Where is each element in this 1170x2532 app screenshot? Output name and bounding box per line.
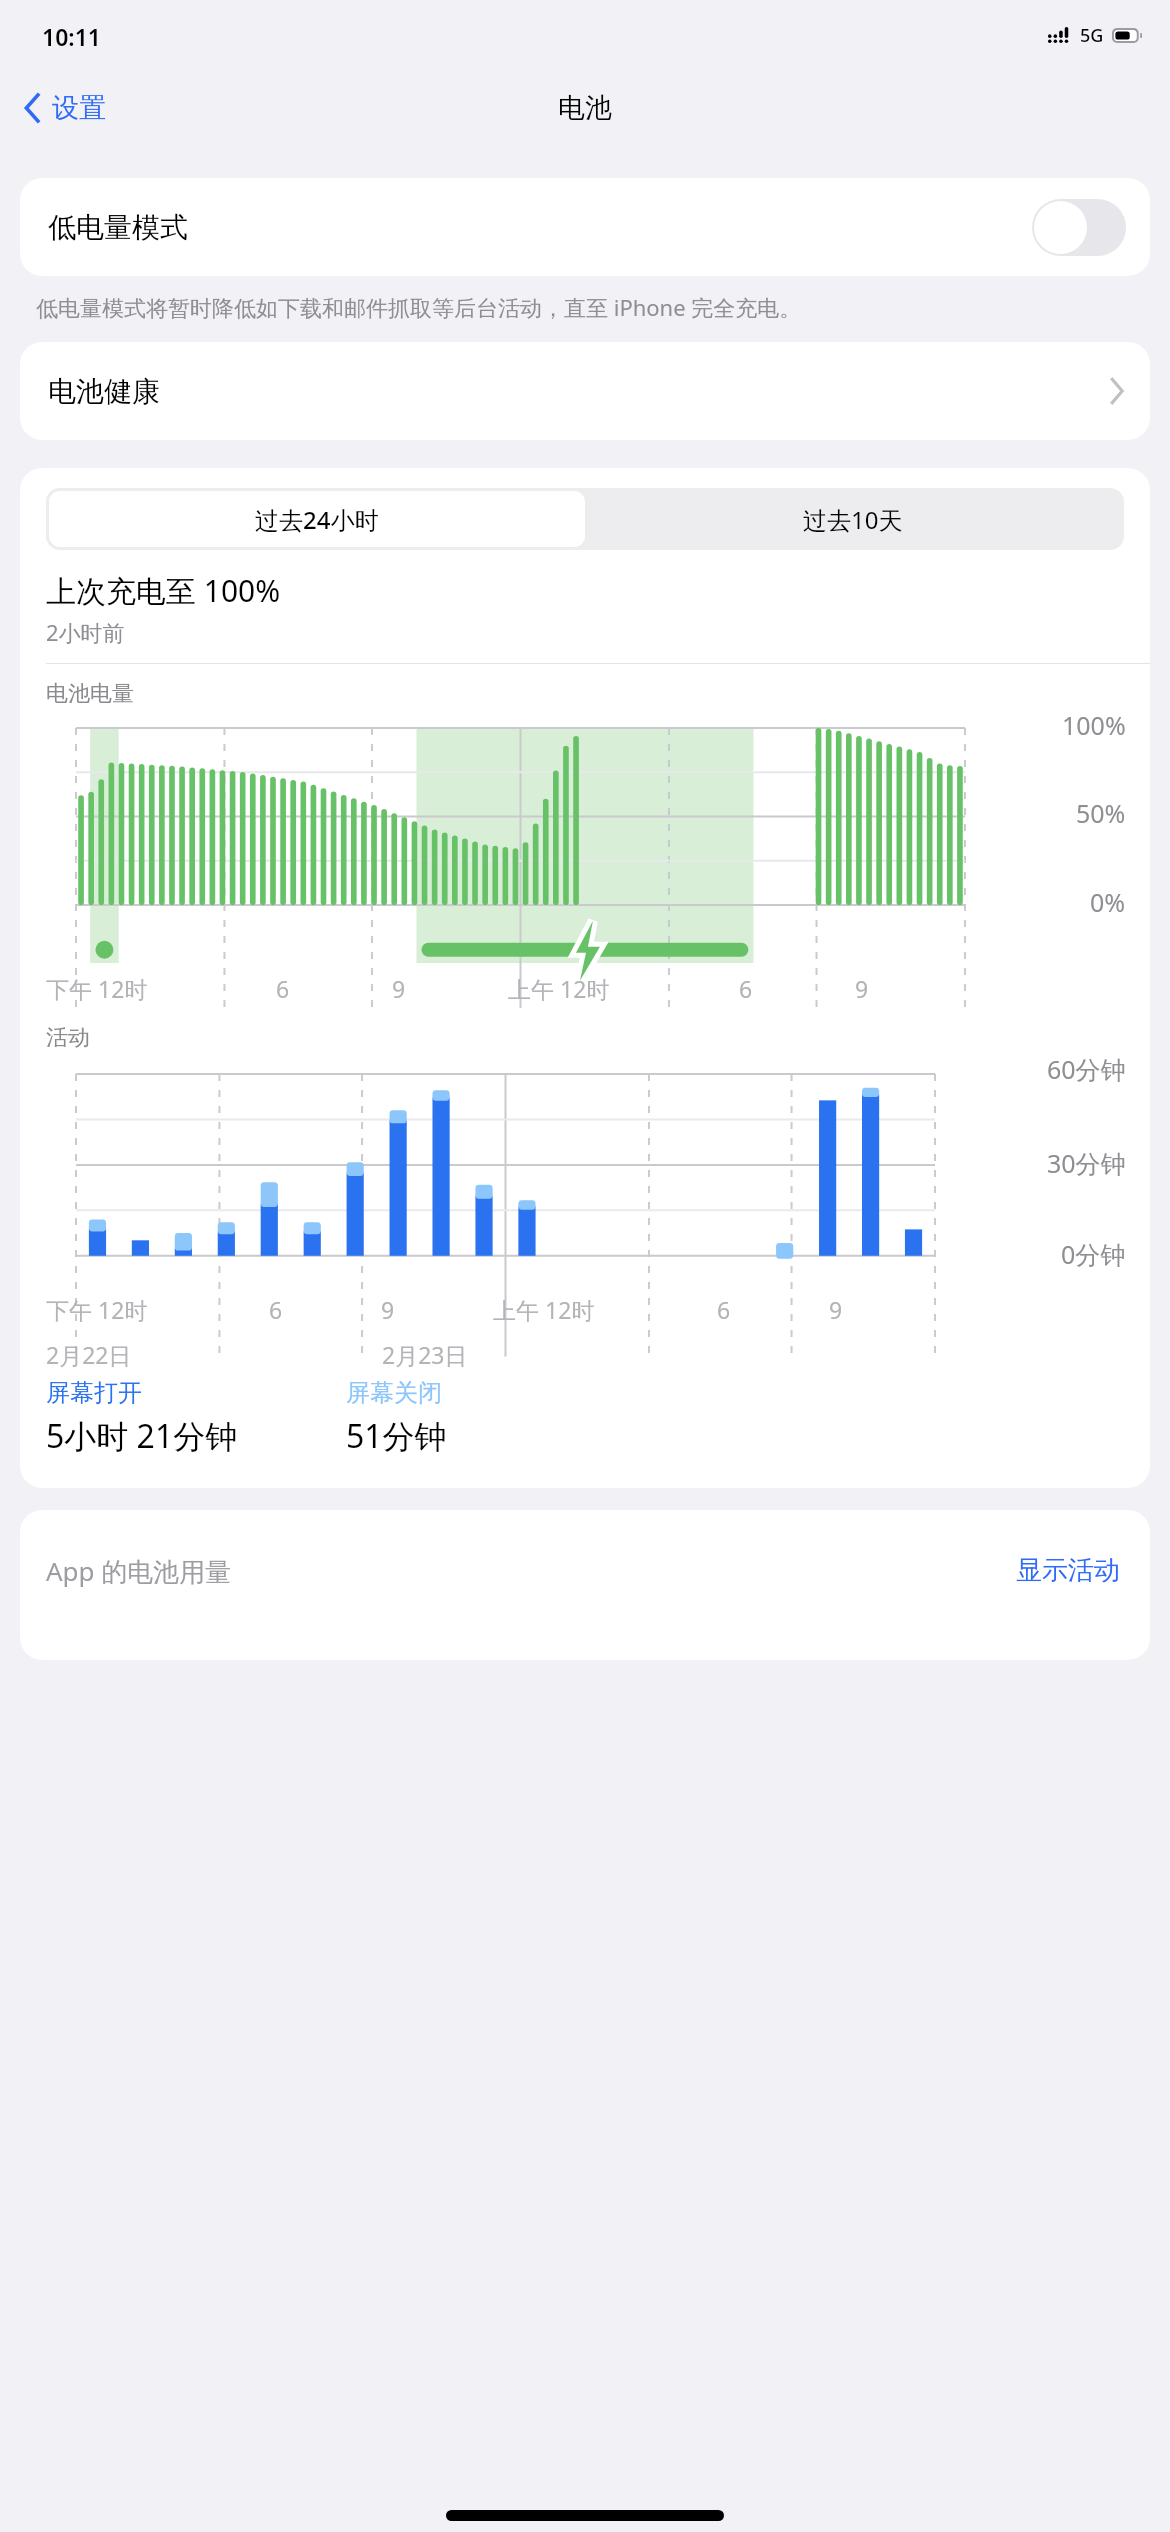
staticText: 电池电量	[46, 680, 134, 708]
staticText: 0%	[1090, 885, 1126, 919]
button[interactable]: 低电量模式	[20, 178, 1150, 276]
staticText: 下午 12时	[46, 973, 148, 1004]
staticText: 2月22日	[46, 1339, 132, 1370]
button[interactable]: 显示活动	[1012, 1550, 1124, 1591]
button[interactable]: 过去24小时	[49, 491, 585, 547]
staticText: 设置	[52, 91, 106, 125]
button[interactable]: 过去10天	[585, 491, 1121, 547]
staticText: 2小时前	[46, 617, 125, 647]
staticText: 60分钟	[1047, 1052, 1126, 1086]
staticText: 6	[739, 973, 753, 1004]
staticText: 上午 12时	[493, 1294, 595, 1325]
staticText: 屏幕关闭	[346, 1378, 442, 1408]
staticText: 50%	[1076, 796, 1126, 830]
staticText: 2月23日	[382, 1339, 468, 1370]
staticText: 30分钟	[1047, 1146, 1126, 1180]
staticText: 屏幕打开	[46, 1378, 142, 1408]
button[interactable]: 低电量模式开关	[1032, 199, 1126, 256]
button[interactable]: 返回设置	[16, 81, 114, 135]
staticText: 6	[269, 1294, 283, 1325]
staticText: 活动	[46, 1024, 90, 1052]
staticText: 电池	[558, 91, 612, 125]
staticText: 低电量模式	[48, 210, 188, 245]
staticText: 9	[829, 1294, 843, 1325]
staticText: 下午 12时	[46, 1294, 148, 1325]
staticText: 电池健康	[48, 374, 160, 409]
staticText: 5小时 21分钟	[46, 1414, 238, 1458]
staticText: 5G	[1080, 23, 1104, 48]
staticText: 0分钟	[1061, 1237, 1126, 1271]
staticText: 6	[276, 973, 290, 1004]
staticText: 上次充电至 100%	[46, 570, 281, 611]
staticText: App 的电池用量	[46, 1553, 232, 1589]
staticText: 6	[717, 1294, 731, 1325]
staticText: 上午 12时	[508, 973, 610, 1004]
staticText: 9	[855, 973, 869, 1004]
staticText: 过去24小时	[255, 503, 379, 536]
staticText: 100%	[1062, 708, 1126, 742]
staticText: 低电量模式将暂时降低如下载和邮件抓取等后台活动，直至 iPhone 完全充电。	[36, 292, 802, 322]
staticText: 51分钟	[346, 1414, 447, 1458]
staticText: 9	[381, 1294, 395, 1325]
staticText: 过去10天	[803, 503, 903, 536]
button[interactable]: 电池健康	[20, 342, 1150, 440]
staticText: 显示活动	[1016, 1554, 1120, 1587]
staticText: 9	[392, 973, 406, 1004]
staticText: 10:11	[42, 21, 101, 52]
